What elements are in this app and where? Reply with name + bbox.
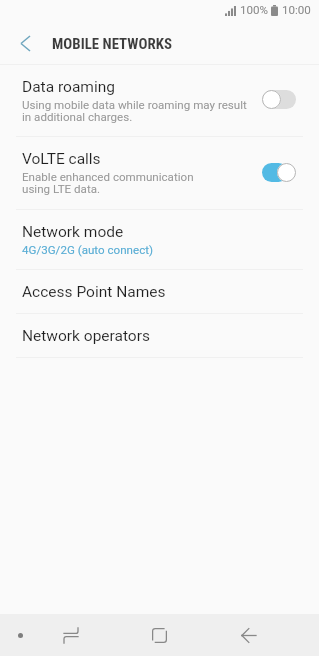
button[interactable]: Back bbox=[204, 614, 293, 656]
staticText: 4G/3G/2G (auto connect) bbox=[22, 243, 154, 257]
staticText: VoLTE calls bbox=[22, 150, 101, 168]
staticText: Access Point Names bbox=[22, 283, 166, 301]
staticText: MOBILE NETWORKS bbox=[52, 35, 172, 52]
button[interactable]: Navigate up bbox=[8, 29, 38, 59]
staticText: Network mode bbox=[22, 223, 124, 241]
staticText: 100% bbox=[240, 3, 269, 17]
button[interactable]: Home bbox=[115, 614, 204, 656]
staticText: 10:00 bbox=[282, 3, 311, 17]
staticText: Data roaming bbox=[22, 78, 115, 96]
button[interactable]: Notification indicator bbox=[6, 621, 34, 649]
staticText: Using mobile data while roaming may resu… bbox=[22, 98, 247, 124]
button[interactable]: On bbox=[262, 163, 296, 182]
button[interactable]: Off bbox=[262, 90, 296, 109]
button[interactable]: VoLTE calls bbox=[0, 136, 319, 209]
button[interactable]: Recents bbox=[26, 614, 115, 656]
button[interactable]: Network operators bbox=[0, 313, 319, 357]
staticText: Enable enhanced communication using LTE … bbox=[22, 170, 194, 196]
button[interactable]: Data roaming bbox=[0, 64, 319, 136]
button[interactable]: Access Point Names bbox=[0, 269, 319, 313]
staticText: Network operators bbox=[22, 327, 150, 345]
button[interactable]: Network mode bbox=[0, 209, 319, 269]
